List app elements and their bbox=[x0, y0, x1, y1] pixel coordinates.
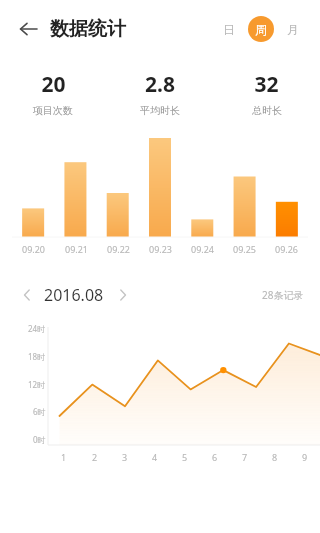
staticText: 月 bbox=[287, 22, 299, 37]
staticText: 6 bbox=[212, 451, 218, 463]
staticText: 09.23 bbox=[149, 243, 173, 255]
staticText: 3 bbox=[122, 451, 128, 463]
staticText: 6时 bbox=[33, 406, 46, 417]
button[interactable]: 周 bbox=[248, 16, 274, 42]
staticText: 2.8 bbox=[145, 70, 175, 99]
staticText: 12时 bbox=[28, 379, 46, 390]
staticText: 总时长 bbox=[252, 104, 282, 117]
button[interactable]: Back bbox=[8, 9, 48, 49]
staticText: 09.21 bbox=[65, 243, 89, 255]
staticText: 9 bbox=[302, 451, 308, 463]
staticText: 09.22 bbox=[107, 243, 131, 255]
button[interactable]: 28条记录 bbox=[262, 288, 304, 302]
staticText: 1 bbox=[61, 451, 67, 463]
staticText: 2 bbox=[92, 451, 98, 463]
button[interactable]: 2.8 bbox=[106, 70, 213, 117]
button[interactable]: 20 bbox=[0, 70, 106, 117]
staticText: 09.26 bbox=[275, 243, 299, 255]
staticText: 09.25 bbox=[233, 243, 257, 255]
staticText: 5 bbox=[182, 451, 188, 463]
staticText: 8 bbox=[272, 451, 278, 463]
staticText: 7 bbox=[242, 451, 248, 463]
staticText: 日 bbox=[223, 22, 235, 37]
button[interactable]: 日 bbox=[216, 16, 242, 42]
staticText: 周 bbox=[255, 22, 267, 37]
button[interactable]: 2016.08 bbox=[44, 284, 104, 306]
staticText: 09.24 bbox=[191, 243, 215, 255]
staticText: 24时 bbox=[28, 323, 46, 334]
staticText: 0时 bbox=[33, 434, 46, 445]
staticText: 20 bbox=[41, 70, 66, 99]
staticText: 数据统计 bbox=[50, 17, 126, 41]
staticText: 18时 bbox=[28, 351, 46, 362]
staticText: 项目次数 bbox=[33, 104, 73, 117]
button[interactable]: 月 bbox=[280, 16, 306, 42]
staticText: 09.20 bbox=[22, 243, 46, 255]
staticText: 32 bbox=[254, 70, 279, 99]
button[interactable]: 32 bbox=[213, 70, 320, 117]
staticText: 平均时长 bbox=[140, 104, 180, 117]
staticText: 4 bbox=[152, 451, 158, 463]
button[interactable]: Next month bbox=[112, 284, 134, 306]
button[interactable]: Previous month bbox=[16, 284, 38, 306]
